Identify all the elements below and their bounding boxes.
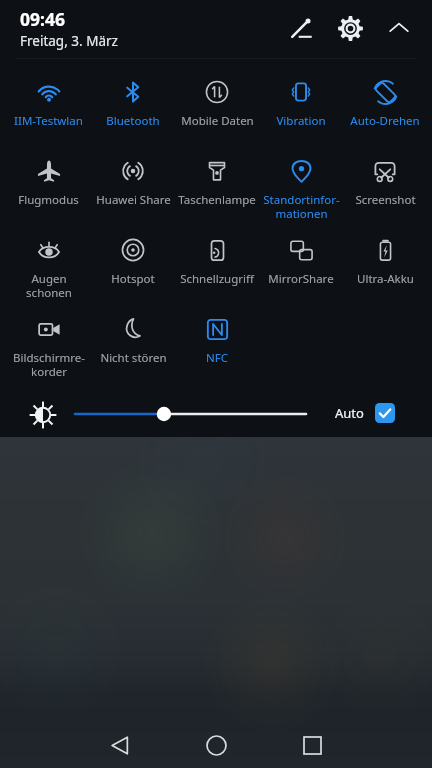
button[interactable]: Auto-Drehen — [343, 58, 427, 142]
staticText: Schnellzugriff — [180, 271, 254, 287]
staticText: Taschenlampe — [178, 192, 256, 208]
staticText: NFC — [206, 350, 228, 366]
staticText: Auto — [335, 404, 364, 422]
staticText: Ultra-Akku — [357, 271, 414, 287]
staticText: MirrorShare — [268, 271, 334, 287]
staticText: IIM-Testwlan — [14, 113, 83, 129]
button[interactable]: Edit — [284, 11, 318, 45]
button[interactable]: NFC — [175, 295, 259, 379]
staticText: Auto-Drehen — [350, 113, 420, 129]
button[interactable] — [75, 403, 306, 425]
button[interactable]: Screenshot — [343, 137, 427, 221]
button[interactable]: Back — [87, 722, 153, 768]
button[interactable]: Settings — [333, 11, 367, 45]
button[interactable]: IIM-Testwlan — [6, 58, 91, 142]
button[interactable]: Standortinfor- mationen — [259, 137, 343, 221]
staticText: 09:46 — [20, 7, 65, 31]
button[interactable]: Augen schonen — [6, 216, 91, 300]
button[interactable]: Ultra-Akku — [343, 216, 427, 300]
button[interactable]: Schnellzugriff — [175, 216, 259, 300]
button[interactable]: Recents — [279, 722, 345, 768]
button[interactable]: Huawei Share — [91, 137, 175, 221]
button[interactable]: Taschenlampe — [175, 137, 259, 221]
staticText: Hotspot — [111, 271, 155, 287]
staticText: Vibration — [276, 113, 326, 129]
staticText: Augen schonen — [26, 271, 72, 300]
staticText: Screenshot — [355, 192, 416, 208]
staticText: Nicht stören — [100, 350, 167, 366]
button[interactable]: Vibration — [259, 58, 343, 142]
button[interactable]: Flugmodus — [6, 137, 91, 221]
button[interactable]: Collapse — [382, 11, 416, 45]
staticText: Mobile Daten — [181, 113, 254, 129]
staticText: Flugmodus — [18, 192, 79, 208]
staticText: Freitag, 3. März — [20, 32, 118, 50]
button[interactable]: Mobile Daten — [175, 58, 259, 142]
staticText: Bildschirmre- korder — [13, 350, 85, 379]
button[interactable]: Nicht stören — [91, 295, 175, 379]
button[interactable]: Brightness — [30, 402, 55, 427]
staticText: Standortinfor- mationen — [263, 192, 340, 221]
button[interactable]: Home — [183, 722, 249, 768]
button[interactable]: Bildschirmre- korder — [6, 295, 91, 379]
staticText: Huawei Share — [96, 192, 171, 208]
button[interactable]: Bluetooth — [91, 58, 175, 142]
button[interactable]: Hotspot — [91, 216, 175, 300]
staticText: Bluetooth — [106, 113, 160, 129]
button[interactable]: MirrorShare — [259, 216, 343, 300]
button[interactable]: Auto — [335, 404, 395, 424]
